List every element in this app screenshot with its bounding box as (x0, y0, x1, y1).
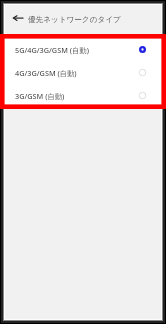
button[interactable]: 3G/GSM (自動) (5, 84, 161, 107)
staticText: 4G/3G/GSM (自動) (15, 68, 77, 78)
staticText: 3G/GSM (自動) (15, 91, 65, 101)
staticText: 優先ネットワークのタイプ (28, 15, 121, 25)
staticText: 5G/4G/3G/GSM (自動) (15, 45, 89, 55)
button[interactable]: 5G/4G/3G/GSM (自動) (5, 38, 161, 61)
button[interactable]: 4G/3G/GSM (自動) (5, 61, 161, 84)
button[interactable]: Back (9, 5, 27, 34)
